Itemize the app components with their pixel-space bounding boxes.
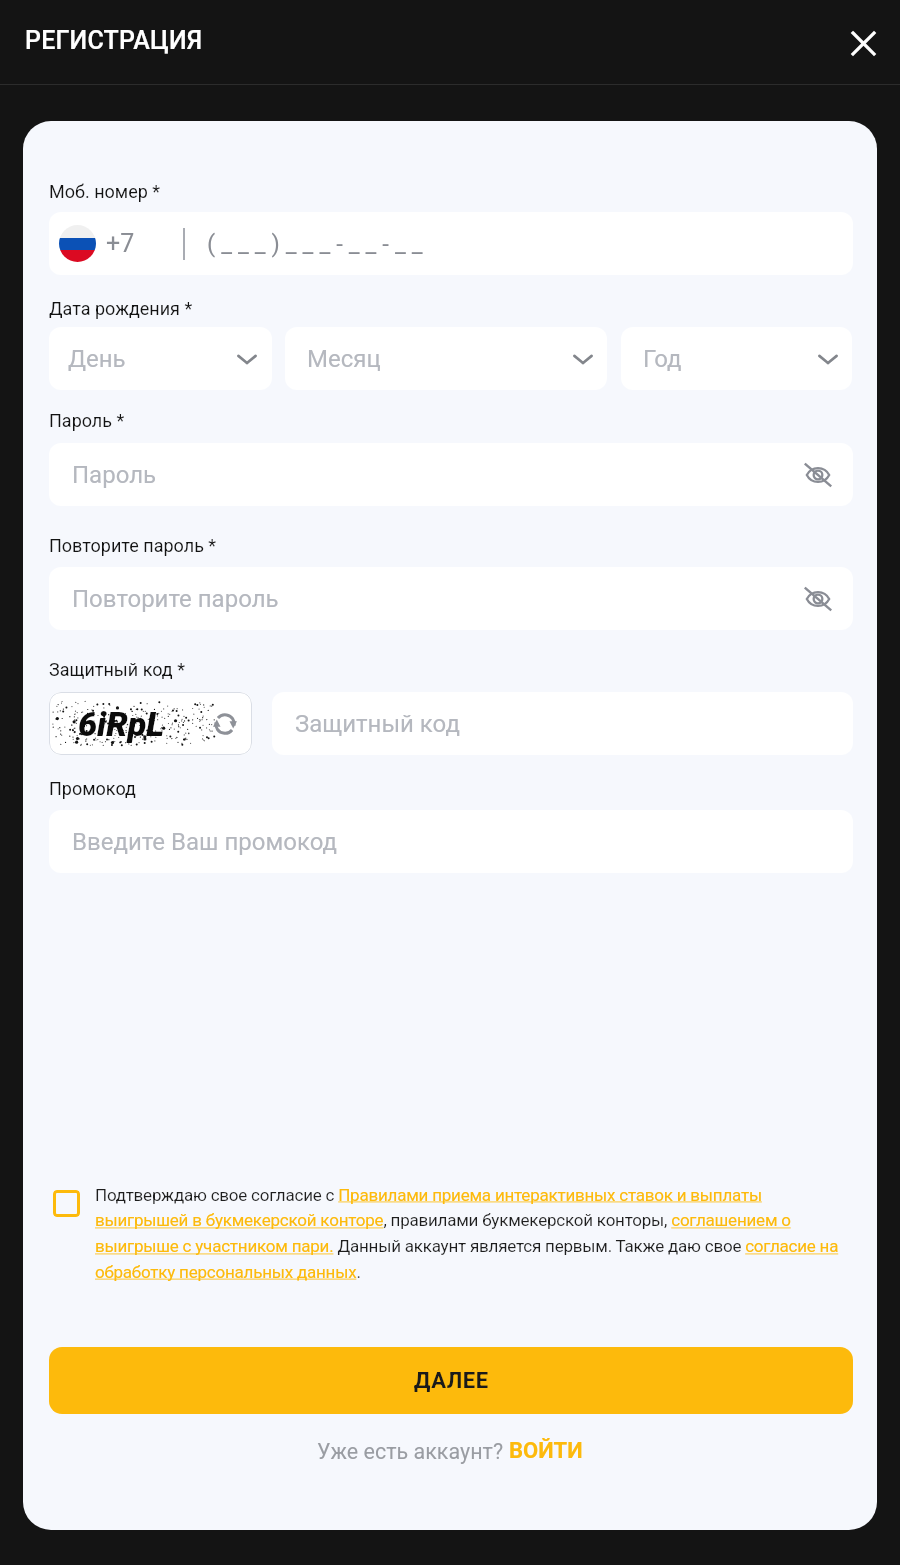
staticText: День — [68, 345, 126, 373]
button[interactable]: Accept terms — [49, 1185, 857, 1282]
staticText: Месяц — [307, 345, 381, 373]
staticText: +7 — [106, 229, 135, 258]
staticText: Моб. номер * — [49, 181, 161, 202]
button[interactable]: Accept terms — [53, 1190, 80, 1217]
button[interactable]: +7 — [49, 212, 853, 275]
button[interactable]: Show password — [797, 454, 839, 496]
staticText: Подтверждаю свое согласие с Правилами пр… — [95, 1185, 857, 1282]
staticText: Защитный код * — [49, 659, 185, 680]
staticText: Повторите пароль — [72, 585, 279, 613]
button[interactable]: Пароль — [49, 443, 853, 506]
staticText: ВОЙТИ — [509, 1438, 583, 1464]
staticText: Промокод — [49, 778, 136, 799]
button[interactable]: Повторите пароль — [49, 567, 853, 630]
button[interactable]: Защитный код — [272, 692, 853, 755]
button[interactable]: Select year — [807, 338, 849, 380]
button[interactable]: Введите Ваш промокод — [49, 810, 853, 873]
staticText: Год — [643, 345, 682, 373]
staticText: ( _ _ _ ) _ _ _ - _ _ - _ _ — [207, 230, 423, 258]
button[interactable]: Show repeated password — [797, 578, 839, 620]
button[interactable]: Captcha image — [49, 692, 252, 755]
button[interactable]: Select day — [226, 338, 268, 380]
staticText: 6iRpL — [78, 704, 165, 744]
button[interactable]: ВОЙТИ — [509, 1438, 583, 1464]
staticText: Защитный код — [295, 710, 460, 738]
staticText: Пароль * — [49, 410, 125, 431]
button[interactable]: Select month — [562, 338, 604, 380]
staticText: Уже есть аккаунт? — [317, 1439, 509, 1464]
button[interactable]: ДАЛЕЕ — [49, 1347, 853, 1414]
staticText: Пароль — [72, 461, 157, 489]
staticText: Дата рождения * — [49, 298, 193, 319]
button[interactable]: Год — [621, 327, 852, 390]
staticText: Повторите пароль * — [49, 535, 217, 556]
staticText: Введите Ваш промокод — [72, 828, 337, 856]
button[interactable]: День — [49, 327, 272, 390]
staticText: ДАЛЕЕ — [414, 1368, 489, 1394]
staticText: РЕГИСТРАЦИЯ — [25, 26, 203, 55]
button[interactable]: Месяц — [285, 327, 607, 390]
button[interactable]: Refresh captcha — [204, 703, 246, 745]
button[interactable]: Close — [839, 19, 887, 67]
